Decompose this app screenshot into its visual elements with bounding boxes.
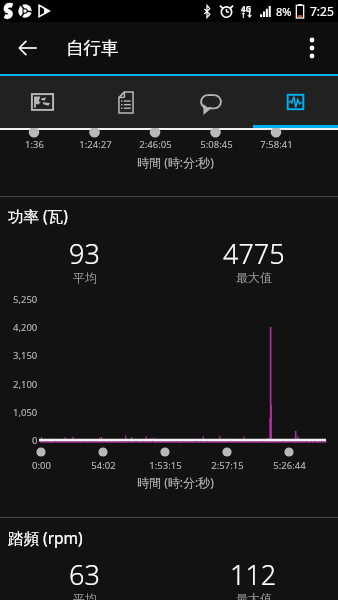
button[interactable]: More options — [295, 29, 333, 67]
staticText: 1:53:15 — [149, 459, 182, 472]
staticText: 1:36 — [25, 138, 44, 151]
staticText: 4775 — [223, 235, 285, 272]
staticText: 1:24:27 — [79, 138, 112, 151]
staticText: 時間 (時:分:秒) — [137, 474, 214, 490]
staticText: 最大值 — [236, 591, 272, 600]
staticText: 1,050 — [13, 406, 38, 419]
staticText: 2:57:15 — [211, 459, 244, 472]
staticText: 0:00 — [32, 459, 51, 472]
staticText: 最大值 — [236, 270, 272, 285]
staticText: 7:58:41 — [260, 138, 293, 151]
staticText: 自行車 — [66, 37, 119, 59]
staticText: 7:25 — [310, 3, 334, 19]
staticText: 平均 — [73, 270, 97, 285]
staticText: 時間 (時:分:秒) — [137, 154, 214, 170]
button[interactable]: Back — [9, 29, 47, 67]
button[interactable]: Laps — [168, 76, 253, 128]
button[interactable]: Charts — [253, 76, 338, 128]
staticText: 5,250 — [13, 293, 38, 306]
staticText: 8% — [276, 4, 292, 19]
staticText: 5:08:45 — [200, 138, 233, 151]
staticText: 平均 — [73, 591, 97, 600]
staticText: 0 — [32, 434, 38, 447]
staticText: 93 — [69, 235, 100, 272]
button[interactable]: Map — [0, 76, 84, 128]
staticText: 踏頻 (rpm) — [8, 527, 83, 548]
staticText: 4,200 — [13, 321, 38, 334]
staticText: 63 — [69, 556, 100, 593]
staticText: 2,100 — [13, 378, 38, 391]
staticText: 2:46:05 — [139, 138, 172, 151]
staticText: 5:26:44 — [273, 459, 306, 472]
button[interactable]: Details — [84, 76, 168, 128]
staticText: 54:02 — [91, 459, 116, 472]
staticText: 功率 (瓦) — [8, 205, 68, 226]
staticText: 112 — [230, 556, 277, 593]
staticText: 3,150 — [13, 349, 38, 362]
staticText: 4G — [241, 3, 252, 14]
